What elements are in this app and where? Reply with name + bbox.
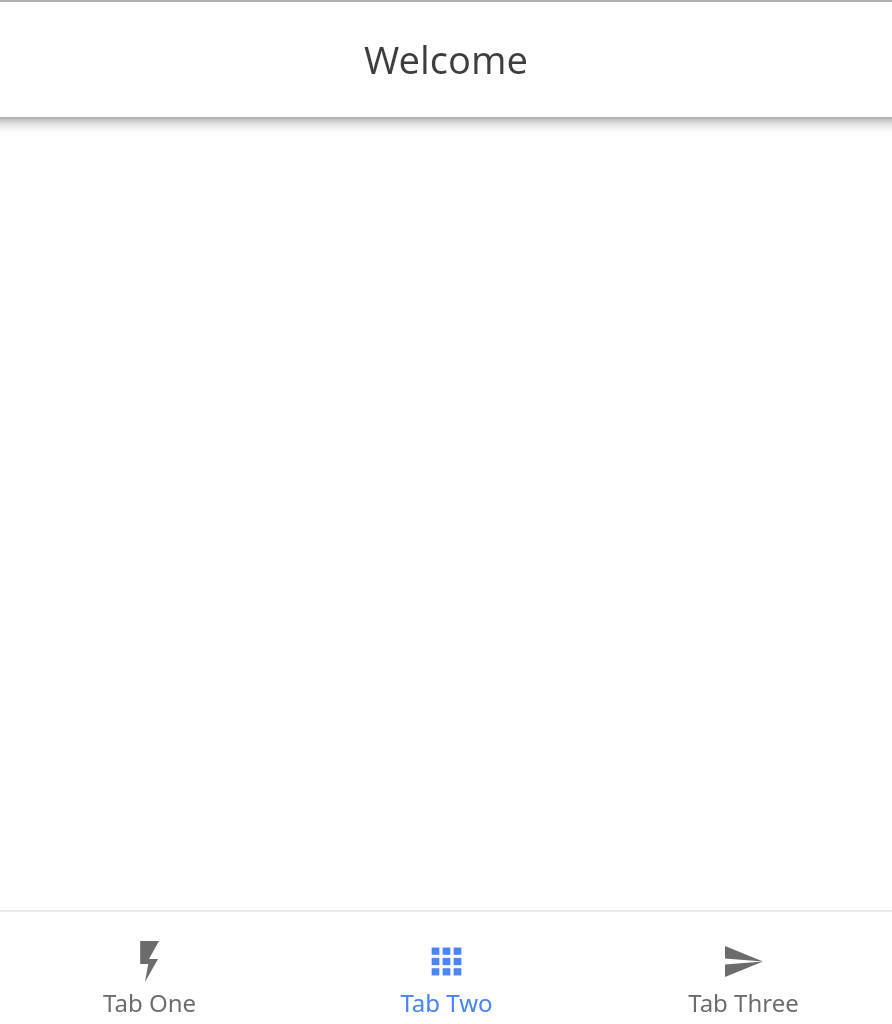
button[interactable]: Tab Two bbox=[298, 910, 595, 1024]
staticText: Tab Two bbox=[400, 986, 493, 1019]
button[interactable]: Tab One bbox=[0, 910, 298, 1024]
staticText: Welcome bbox=[0, 33, 892, 85]
button[interactable]: Tab Three bbox=[595, 910, 892, 1024]
staticText: Tab Three bbox=[688, 986, 799, 1019]
staticText: Tab One bbox=[103, 986, 196, 1019]
